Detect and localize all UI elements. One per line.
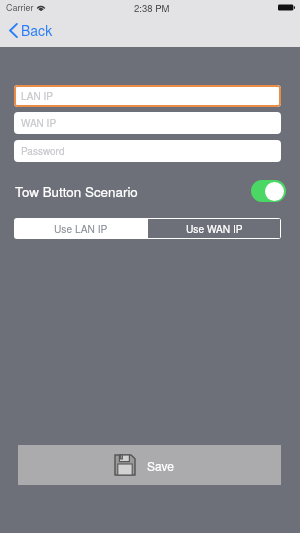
staticText: Use LAN IP: [54, 221, 108, 236]
button[interactable]: Back: [9, 20, 53, 40]
button[interactable]: Password: [14, 140, 281, 162]
button[interactable]: Use WAN IP: [147, 218, 281, 239]
button[interactable]: Tow Button Scenario toggle: [251, 180, 286, 202]
button[interactable]: WAN IP: [14, 112, 281, 134]
staticText: Password: [21, 144, 65, 158]
staticText: WAN IP: [21, 116, 57, 130]
other: Back: [9, 23, 18, 38]
button[interactable]: Save: [18, 445, 281, 485]
button[interactable]: Use LAN IP: [14, 218, 147, 239]
staticText: Back: [21, 20, 53, 40]
staticText: 2:38 PM: [134, 1, 170, 15]
staticText: Carrier: [6, 1, 34, 14]
button[interactable]: LAN IP: [14, 85, 281, 107]
staticText: Use WAN IP: [186, 221, 243, 236]
staticText: Tow Button Scenario: [15, 182, 138, 201]
staticText: Save: [147, 457, 174, 474]
staticText: LAN IP: [21, 89, 53, 103]
